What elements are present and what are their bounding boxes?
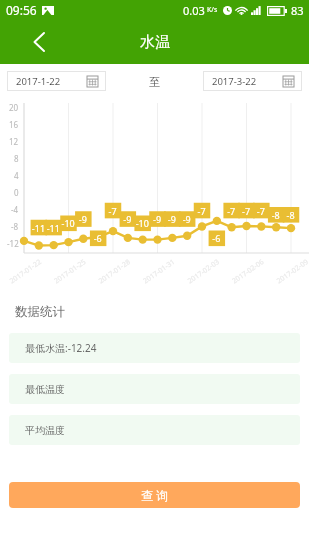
button[interactable]: 最低温度 — [9, 374, 300, 404]
staticText: 至 — [149, 75, 160, 89]
staticText: 0.03 — [183, 3, 205, 18]
button[interactable]: 查 询 — [9, 482, 300, 508]
button[interactable]: 平均温度 — [9, 415, 300, 445]
button[interactable]: 2017-3-22 — [203, 71, 302, 91]
staticText: 最低水温:-12.24 — [25, 341, 97, 355]
staticText: 2017-1-22 — [16, 75, 61, 88]
button[interactable]: Back — [20, 22, 58, 62]
staticText: 查 询 — [141, 487, 169, 503]
button[interactable]: 最低水温:-12.24 — [9, 333, 300, 363]
staticText: 数据统计 — [15, 304, 65, 320]
staticText: 水温 — [140, 33, 170, 52]
button[interactable]: 2017-1-22 — [7, 71, 106, 91]
staticText: K/s — [207, 5, 218, 15]
staticText: 09:56 — [6, 2, 37, 18]
staticText: 2017-3-22 — [212, 75, 257, 88]
staticText: 最低温度 — [25, 383, 65, 396]
staticText: 83 — [291, 3, 304, 18]
staticText: 平均温度 — [25, 424, 65, 437]
